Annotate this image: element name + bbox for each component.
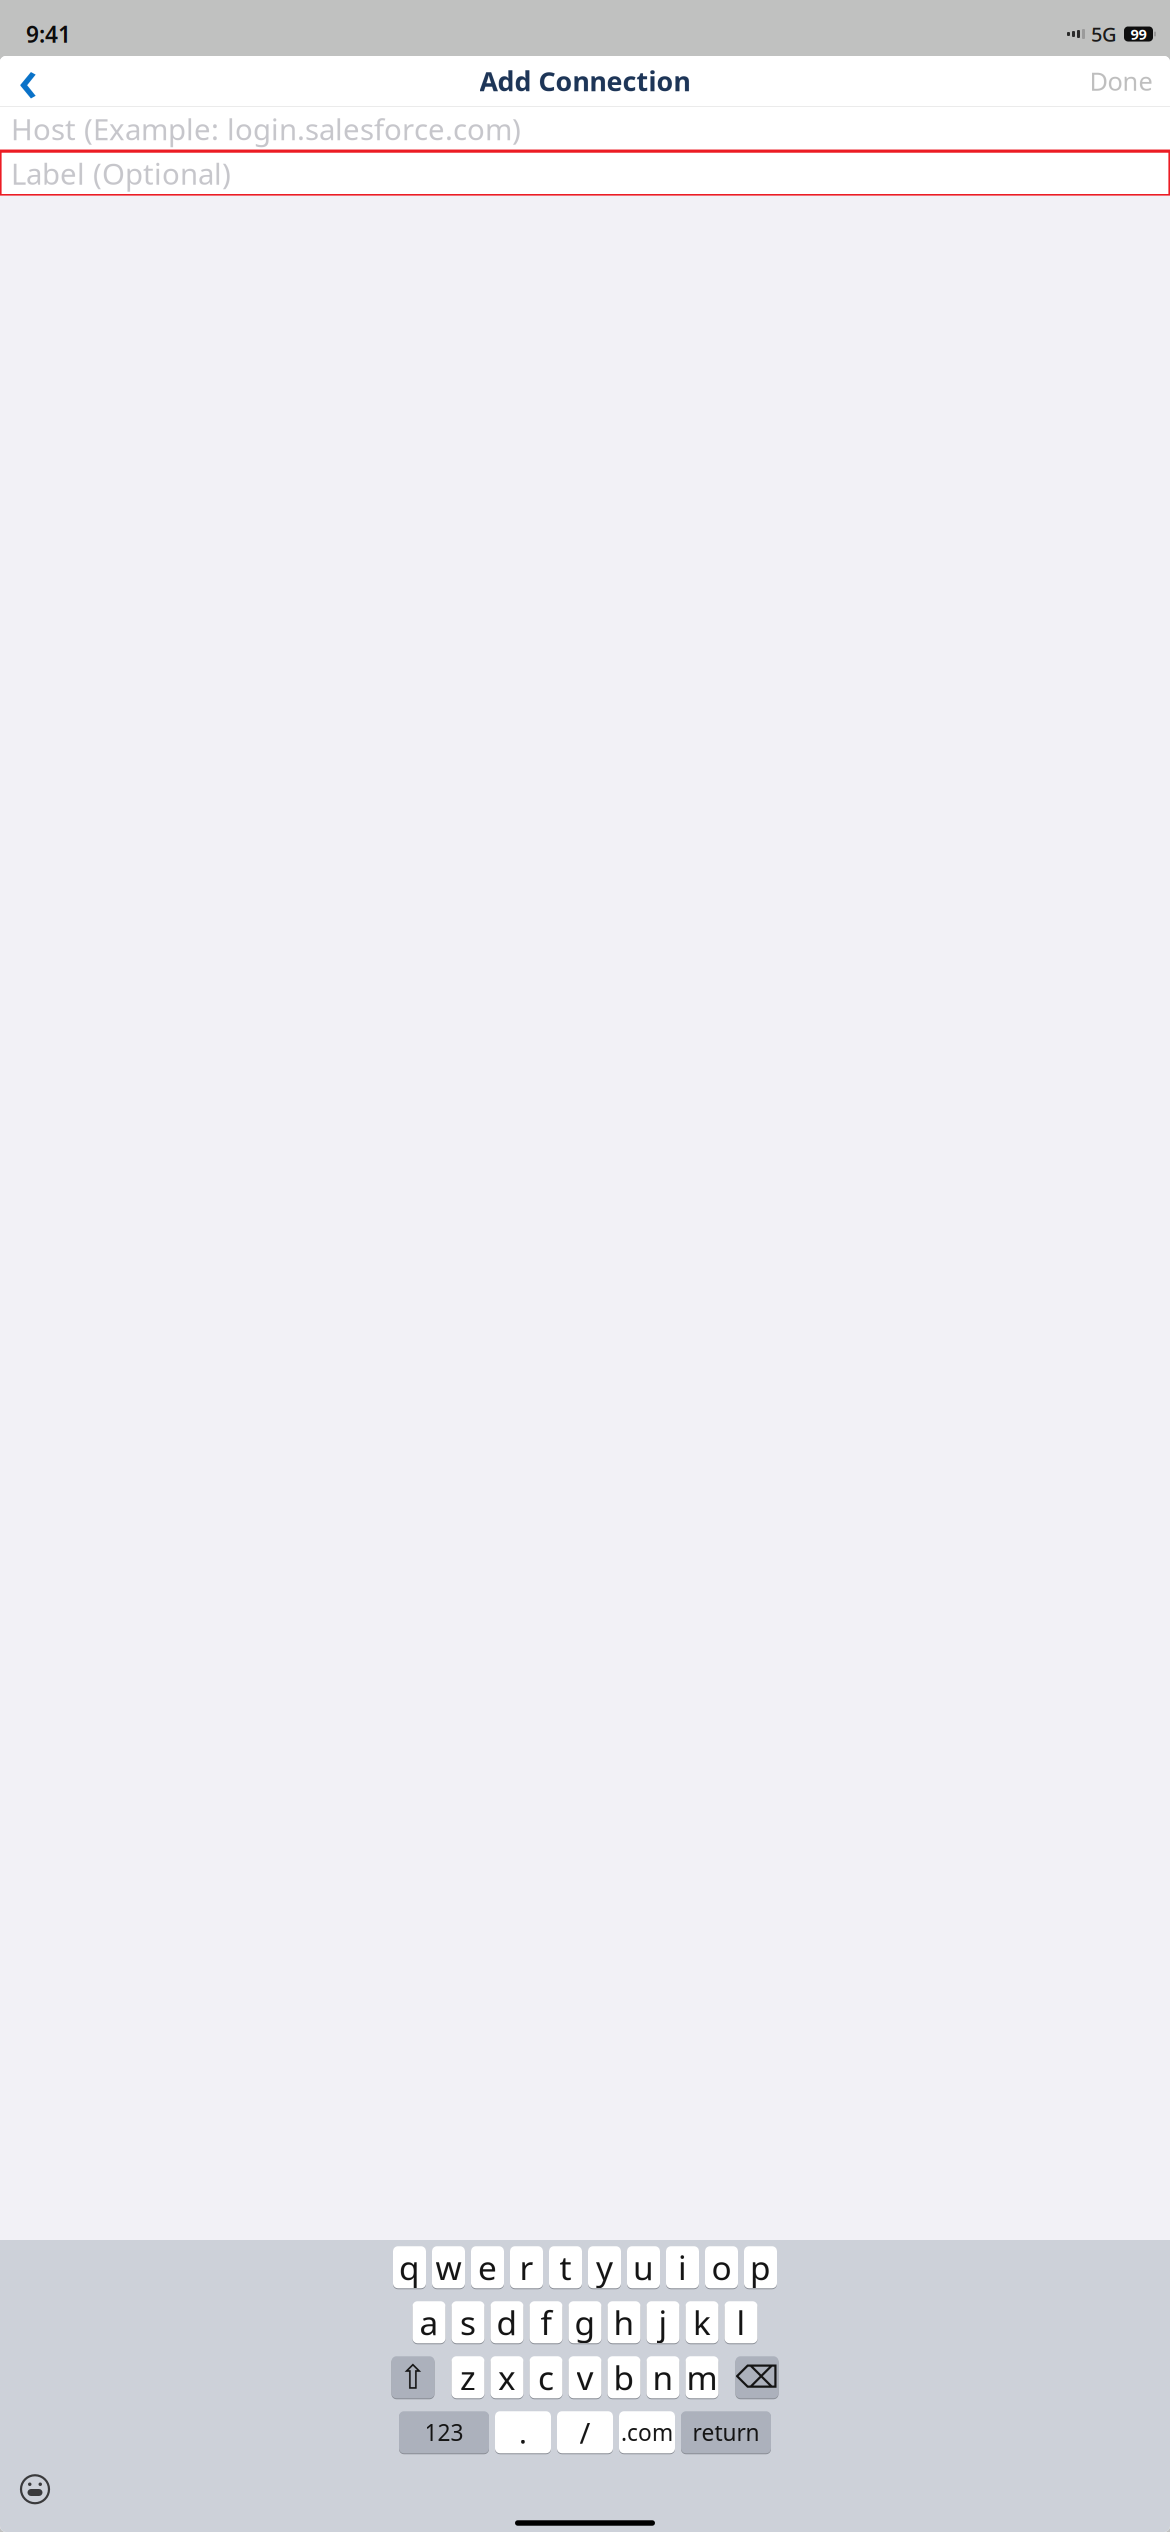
staticText: g bbox=[574, 2300, 595, 2344]
staticText: t bbox=[559, 2245, 571, 2289]
staticText: m bbox=[686, 2355, 717, 2399]
staticText: r bbox=[519, 2245, 533, 2289]
staticText: q bbox=[399, 2245, 420, 2289]
button[interactable]: / bbox=[557, 2410, 613, 2454]
staticText: .com bbox=[621, 2417, 673, 2447]
button[interactable]: z bbox=[451, 2355, 484, 2399]
button[interactable]: m bbox=[685, 2355, 718, 2399]
staticText: a bbox=[419, 2300, 438, 2344]
button[interactable]: r bbox=[510, 2245, 543, 2289]
button[interactable]: Shift bbox=[391, 2355, 434, 2399]
button[interactable]: p bbox=[744, 2245, 777, 2289]
button[interactable]: l bbox=[724, 2300, 757, 2344]
staticText: n bbox=[652, 2355, 673, 2399]
button[interactable]: Done bbox=[1082, 58, 1160, 104]
button[interactable]: o bbox=[705, 2245, 738, 2289]
staticText: b bbox=[613, 2355, 634, 2399]
button[interactable]: j bbox=[646, 2300, 679, 2344]
staticText: Done bbox=[1089, 64, 1152, 98]
button[interactable]: Host (Example: login.salesforce.com) bbox=[0, 107, 1170, 151]
staticText: 99 bbox=[1130, 24, 1146, 44]
staticText: ⌫ bbox=[735, 2360, 778, 2395]
staticText: z bbox=[460, 2355, 476, 2399]
button[interactable]: return bbox=[681, 2410, 771, 2454]
button[interactable]: t bbox=[549, 2245, 582, 2289]
button[interactable]: q bbox=[393, 2245, 426, 2289]
staticText: 123 bbox=[424, 2417, 463, 2447]
staticText: ‹ bbox=[18, 37, 38, 119]
button[interactable]: Label (Optional) bbox=[0, 151, 1170, 196]
button[interactable]: k bbox=[685, 2300, 718, 2344]
button[interactable]: Back bbox=[0, 58, 56, 104]
button[interactable]: c bbox=[529, 2355, 562, 2399]
button[interactable]: s bbox=[451, 2300, 484, 2344]
staticText: Add Connection bbox=[479, 63, 690, 99]
staticText: return bbox=[692, 2417, 759, 2447]
staticText: y bbox=[596, 2245, 613, 2289]
staticText: i bbox=[678, 2245, 687, 2289]
staticText: Label (Optional) bbox=[11, 154, 231, 193]
staticText: 9:41 bbox=[26, 19, 71, 49]
staticText: c bbox=[538, 2355, 554, 2399]
staticText: h bbox=[613, 2300, 634, 2344]
staticText: 5G bbox=[1091, 21, 1117, 47]
staticText: . bbox=[519, 2413, 527, 2452]
button[interactable]: i bbox=[666, 2245, 699, 2289]
staticText: o bbox=[711, 2245, 731, 2289]
staticText: ⇧ bbox=[399, 2358, 427, 2396]
button[interactable]: h bbox=[607, 2300, 640, 2344]
button[interactable]: 123 bbox=[399, 2410, 489, 2454]
button[interactable]: Emoji bbox=[12, 2466, 58, 2512]
button[interactable]: n bbox=[646, 2355, 679, 2399]
staticText: p bbox=[750, 2245, 771, 2289]
button[interactable]: e bbox=[471, 2245, 504, 2289]
staticText: s bbox=[460, 2300, 476, 2344]
button[interactable]: a bbox=[412, 2300, 445, 2344]
button[interactable]: .com bbox=[619, 2410, 675, 2454]
staticText: e bbox=[478, 2245, 497, 2289]
staticText: v bbox=[576, 2355, 593, 2399]
staticText: l bbox=[736, 2300, 745, 2344]
button[interactable]: g bbox=[568, 2300, 601, 2344]
staticText: Host (Example: login.salesforce.com) bbox=[11, 109, 521, 148]
button[interactable]: w bbox=[432, 2245, 465, 2289]
button[interactable]: b bbox=[607, 2355, 640, 2399]
button[interactable]: Delete bbox=[735, 2355, 778, 2399]
staticText: f bbox=[540, 2300, 551, 2344]
button[interactable]: u bbox=[627, 2245, 660, 2289]
button[interactable]: y bbox=[588, 2245, 621, 2289]
button[interactable]: f bbox=[529, 2300, 562, 2344]
button[interactable]: x bbox=[490, 2355, 523, 2399]
button[interactable]: . bbox=[495, 2410, 551, 2454]
staticText: j bbox=[658, 2300, 667, 2344]
staticText: d bbox=[496, 2300, 517, 2344]
staticText: w bbox=[435, 2245, 461, 2289]
button[interactable]: v bbox=[568, 2355, 601, 2399]
staticText: / bbox=[579, 2413, 590, 2452]
staticText: k bbox=[693, 2300, 711, 2344]
staticText: x bbox=[498, 2355, 516, 2399]
staticText: u bbox=[633, 2245, 654, 2289]
button[interactable]: d bbox=[490, 2300, 523, 2344]
